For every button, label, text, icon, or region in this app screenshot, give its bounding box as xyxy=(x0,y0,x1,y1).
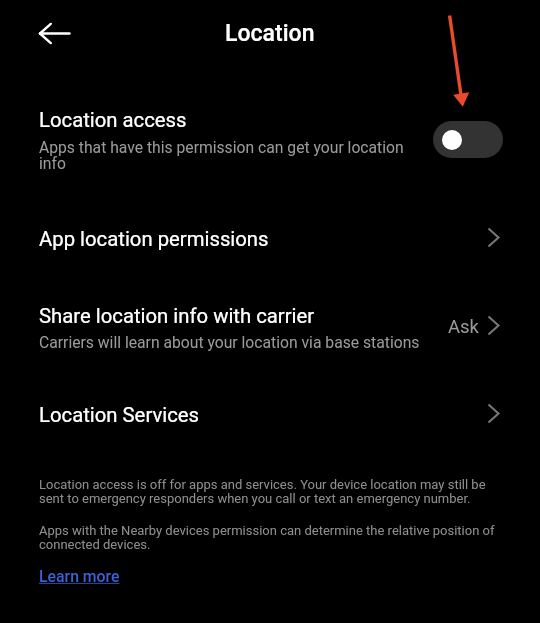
staticText: Carriers will learn about your location … xyxy=(39,333,420,351)
button[interactable]: Location Services xyxy=(0,382,540,444)
button[interactable]: Location access xyxy=(0,96,540,192)
staticText: Share location info with carrier xyxy=(39,304,315,328)
button[interactable]: Share location info with carrier xyxy=(0,288,540,364)
staticText: App location permissions xyxy=(39,227,269,251)
staticText: Location xyxy=(225,20,315,47)
staticText: Location Services xyxy=(39,403,200,427)
staticText: Apps with the Nearby devices permission … xyxy=(39,523,501,552)
staticText: Location access xyxy=(39,108,187,132)
button[interactable]: Navigate up xyxy=(30,12,74,56)
staticText: Apps that have this permission can get y… xyxy=(39,138,409,173)
staticText: Learn more xyxy=(39,567,120,586)
staticText: Ask xyxy=(448,316,479,338)
button[interactable]: App location permissions xyxy=(0,206,540,268)
staticText: Location access is off for apps and serv… xyxy=(39,477,491,506)
button[interactable]: Location access, off xyxy=(433,121,503,158)
button[interactable]: Learn more xyxy=(39,567,120,586)
